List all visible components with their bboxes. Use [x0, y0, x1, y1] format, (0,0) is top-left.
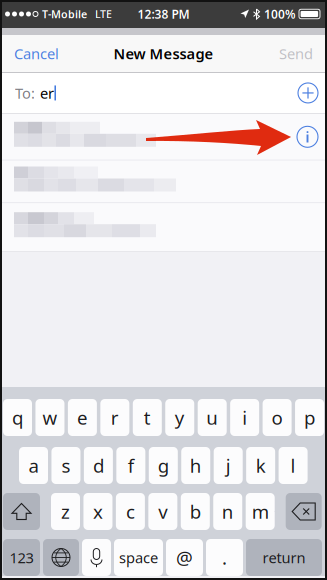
staticText: T-Mobile — [42, 7, 87, 21]
staticText: v — [158, 499, 167, 524]
staticText: w — [42, 405, 57, 430]
staticText: k — [256, 453, 266, 478]
staticText: 123 — [9, 548, 33, 567]
staticText: t — [144, 405, 151, 430]
staticText: l — [291, 453, 296, 478]
button[interactable]: e — [68, 399, 97, 436]
staticText: u — [206, 405, 218, 430]
staticText: Send — [279, 44, 313, 63]
button[interactable]: Contact info — [288, 114, 327, 160]
staticText: @ — [176, 545, 193, 570]
staticText: o — [272, 405, 283, 430]
staticText: s — [61, 453, 70, 478]
button[interactable]: Delete — [286, 493, 322, 530]
button[interactable]: Send — [269, 35, 327, 72]
button[interactable]: space — [114, 539, 163, 576]
staticText: LTE — [95, 7, 112, 21]
staticText: g — [158, 453, 169, 478]
button[interactable]: z — [51, 493, 80, 530]
button[interactable]: f — [116, 447, 145, 484]
button[interactable]: q — [3, 399, 32, 436]
staticText: e — [77, 405, 88, 430]
button[interactable]: t — [133, 399, 162, 436]
staticText: p — [304, 405, 315, 430]
button[interactable]: s — [51, 447, 80, 484]
button[interactable]: n — [213, 493, 242, 530]
button[interactable]: l — [279, 447, 308, 484]
staticText: r — [111, 405, 119, 430]
button[interactable]: x — [83, 493, 112, 530]
button[interactable]: . — [206, 539, 243, 576]
button[interactable]: m — [246, 493, 275, 530]
staticText: 12:38 PM — [137, 6, 189, 22]
button[interactable]: g — [149, 447, 178, 484]
staticText: To: — [15, 83, 35, 103]
button[interactable]: Next keyboard — [43, 539, 79, 576]
staticText: return — [262, 548, 305, 567]
button[interactable]: h — [181, 447, 210, 484]
button[interactable]: j — [214, 447, 243, 484]
staticText: Cancel — [14, 44, 59, 63]
staticText: i — [242, 405, 247, 430]
button[interactable]: return — [246, 539, 322, 576]
button[interactable]: p — [295, 399, 324, 436]
button[interactable]: i — [230, 399, 259, 436]
staticText: a — [28, 453, 38, 478]
button[interactable]: 123 — [3, 539, 40, 576]
staticText: x — [93, 499, 103, 524]
staticText: z — [61, 499, 70, 524]
button[interactable]: Dictation — [82, 539, 111, 576]
staticText: n — [222, 499, 234, 524]
staticText: y — [175, 405, 185, 430]
button[interactable]: w — [35, 399, 64, 436]
button[interactable]: u — [198, 399, 227, 436]
staticText: 100% — [264, 6, 296, 22]
button[interactable]: d — [84, 447, 113, 484]
button[interactable]: k — [246, 447, 275, 484]
staticText: space — [119, 548, 158, 567]
staticText: f — [128, 453, 134, 478]
button[interactable]: @ — [166, 539, 203, 576]
staticText: er — [40, 83, 54, 103]
staticText: c — [126, 499, 135, 524]
button[interactable]: Shift — [3, 493, 40, 530]
button[interactable]: b — [181, 493, 210, 530]
staticText: j — [226, 453, 231, 478]
button[interactable]: y — [165, 399, 194, 436]
staticText: q — [12, 405, 23, 430]
button[interactable]: Add contact — [289, 73, 327, 113]
staticText: h — [190, 453, 202, 478]
button[interactable]: v — [148, 493, 177, 530]
button[interactable]: c — [116, 493, 145, 530]
button[interactable]: r — [100, 399, 129, 436]
staticText: m — [252, 499, 269, 524]
staticText: d — [93, 453, 104, 478]
staticText: New Message — [113, 44, 213, 63]
staticText: . — [222, 545, 227, 570]
button[interactable]: o — [263, 399, 292, 436]
button[interactable]: Cancel — [0, 35, 69, 72]
button[interactable]: a — [19, 447, 48, 484]
staticText: b — [190, 499, 201, 524]
